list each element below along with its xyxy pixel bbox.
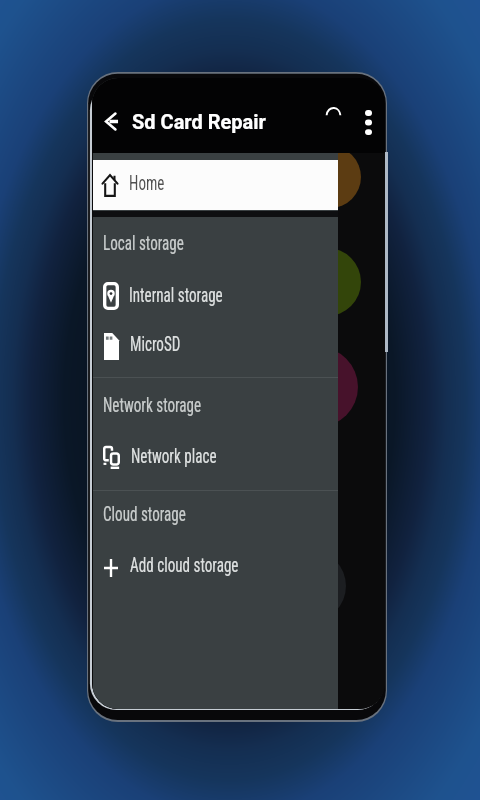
button[interactable] [93,160,338,210]
staticText: Cloud storage [103,502,186,527]
staticText: Add cloud storage [130,553,239,578]
button[interactable] [93,546,338,598]
staticText: Sd Card Repair [132,110,266,133]
button[interactable] [93,324,338,376]
button[interactable] [93,223,338,281]
staticText: Internal storage [129,283,223,308]
button[interactable] [93,378,338,436]
button[interactable] [93,436,338,488]
staticText: Local storage [103,231,184,256]
staticText: Network storage [103,393,202,418]
button[interactable] [93,274,338,324]
button[interactable] [93,490,338,546]
staticText: MicroSD [130,332,180,357]
button[interactable]: Collapse [315,95,352,130]
staticText: Home [129,171,165,196]
button[interactable]: More options [353,105,384,140]
staticText: Network place [131,444,217,469]
button[interactable]: Navigate up [94,104,127,139]
